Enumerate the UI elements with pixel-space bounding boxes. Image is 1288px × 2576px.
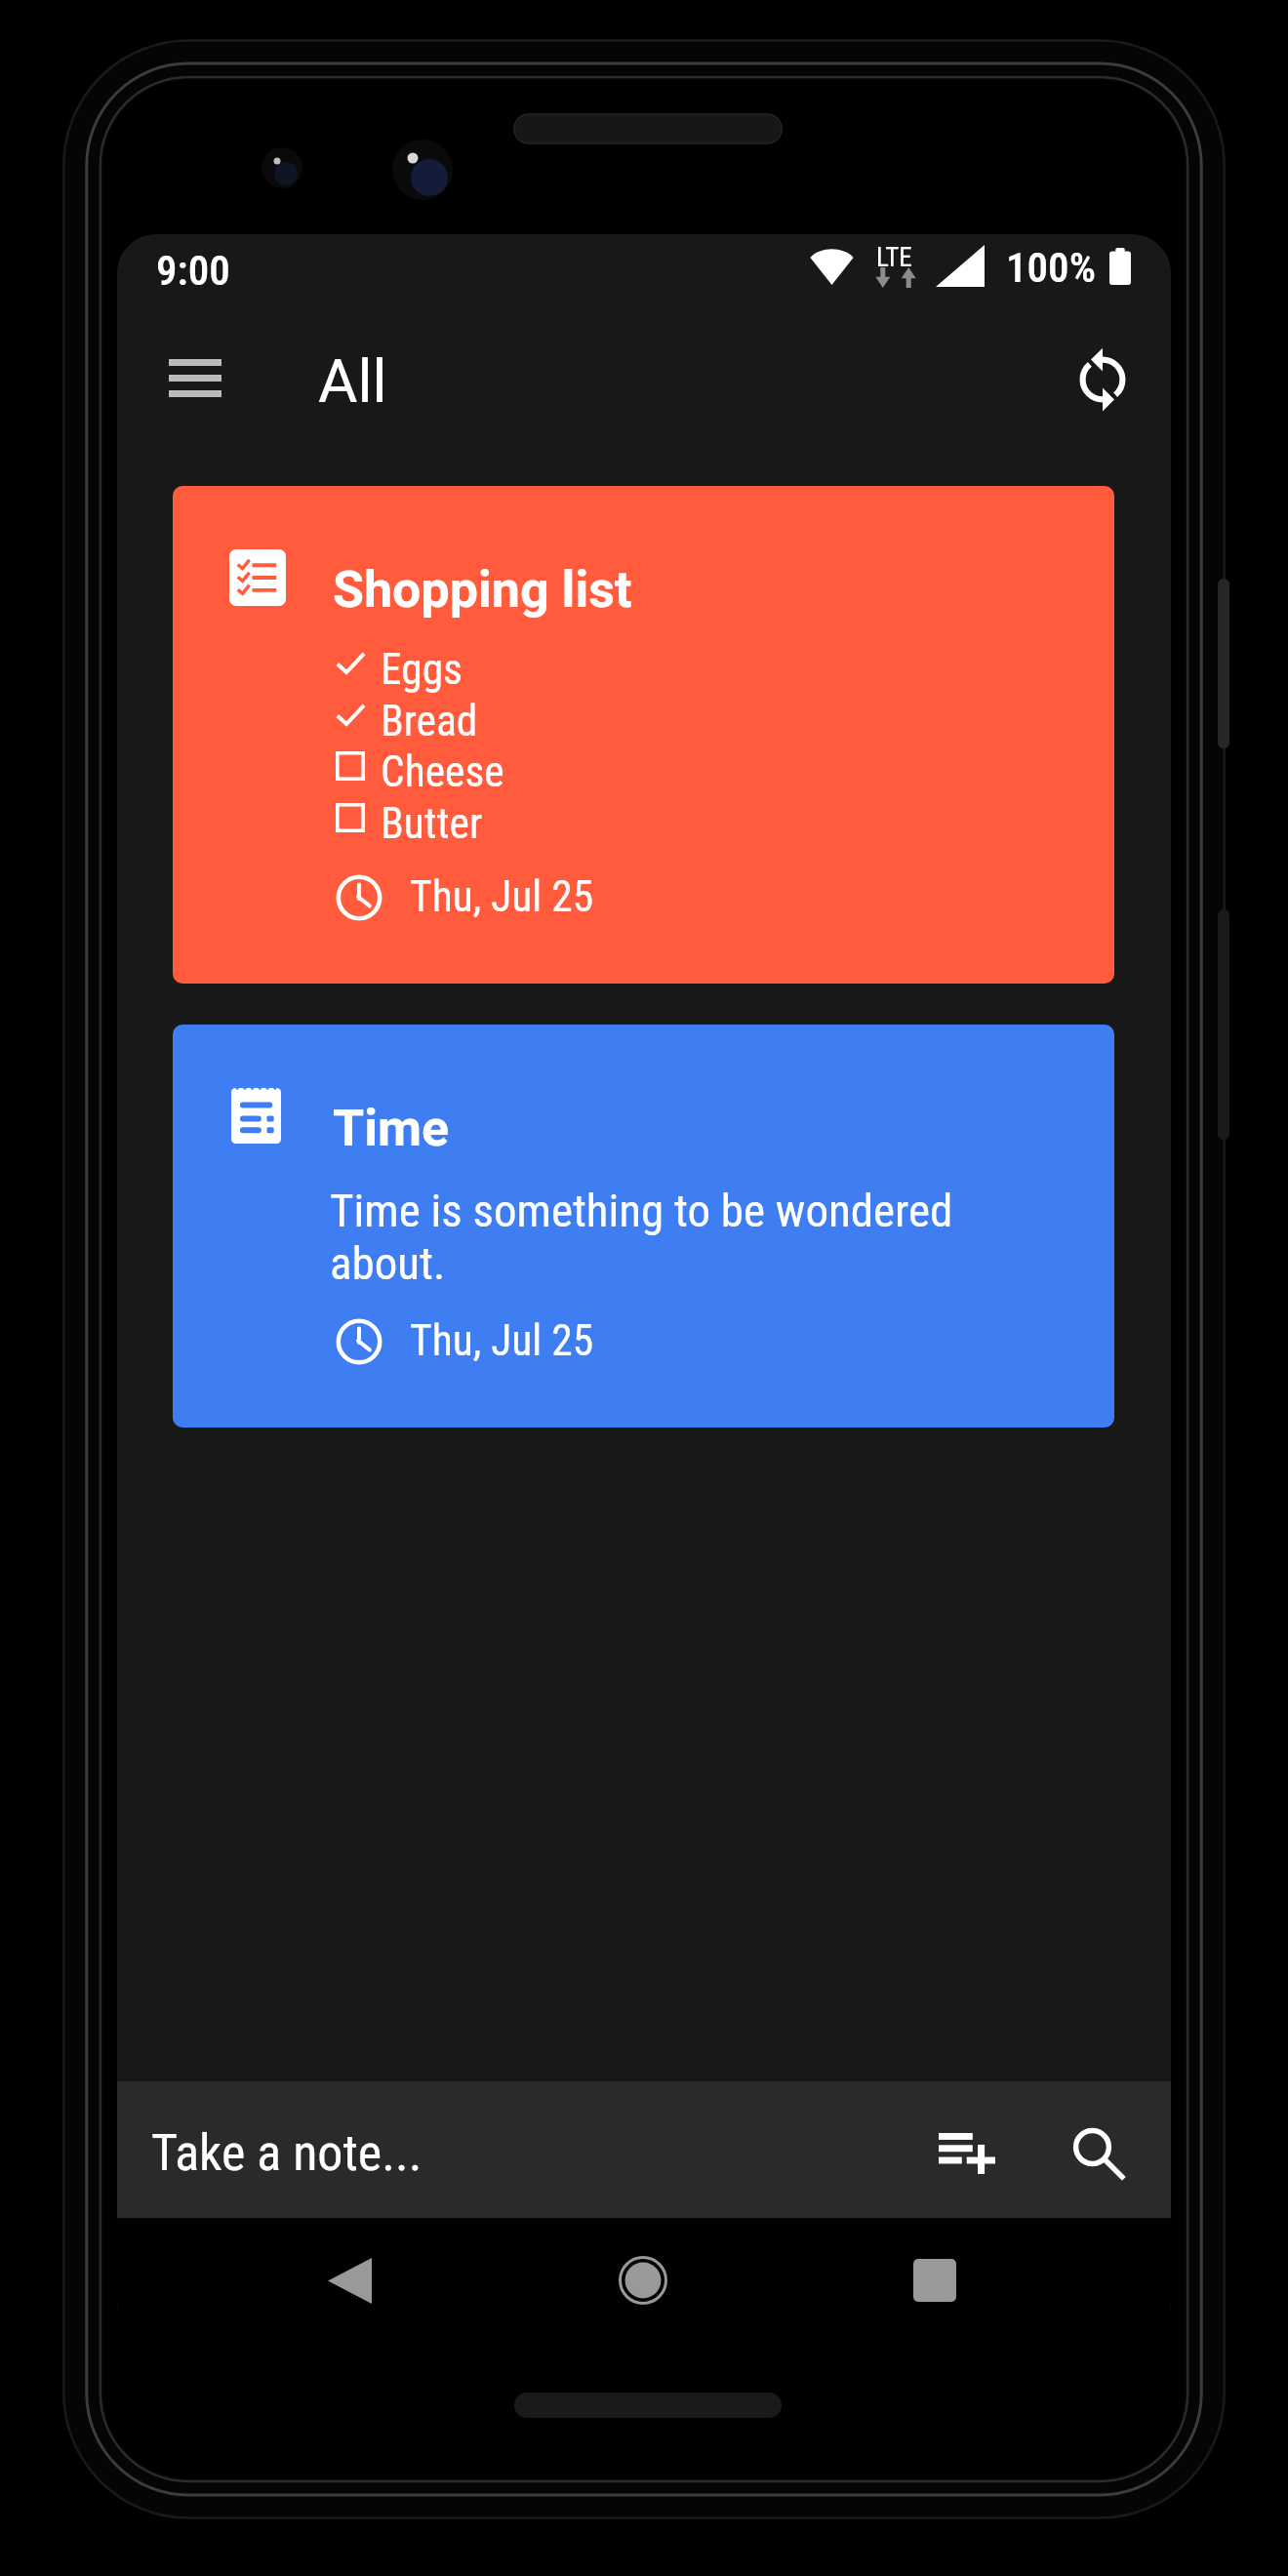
button[interactable]: Open navigation drawer — [141, 324, 249, 432]
staticText: Eggs — [381, 645, 463, 695]
button[interactable]: Search — [1045, 2100, 1152, 2207]
staticText: Thu, Jul 25 — [410, 872, 594, 922]
staticText: LTE — [876, 242, 912, 273]
staticText: Time is something to be wondered about. — [330, 1184, 1013, 1290]
button[interactable]: Recent apps — [881, 2227, 988, 2334]
button[interactable]: Shopping list — [173, 486, 1114, 984]
staticText: All — [318, 345, 387, 417]
staticText: Time — [333, 1099, 450, 1158]
button[interactable]: Back — [296, 2227, 403, 2334]
staticText: Thu, Jul 25 — [410, 1316, 594, 1366]
button[interactable]: Sync — [1049, 326, 1156, 433]
staticText: Bread — [381, 697, 478, 746]
button[interactable]: Take a note... — [117, 2081, 898, 2218]
staticText: Take a note... — [151, 2123, 423, 2183]
staticText: Butter — [381, 799, 483, 849]
button[interactable]: Time — [173, 1025, 1114, 1428]
staticText: 9:00 — [156, 246, 230, 295]
staticText: Cheese — [381, 747, 504, 797]
button[interactable]: New checklist — [913, 2100, 1021, 2207]
staticText: 100% — [1006, 243, 1096, 292]
button[interactable]: Home — [589, 2227, 697, 2334]
staticText: Shopping list — [333, 560, 632, 620]
